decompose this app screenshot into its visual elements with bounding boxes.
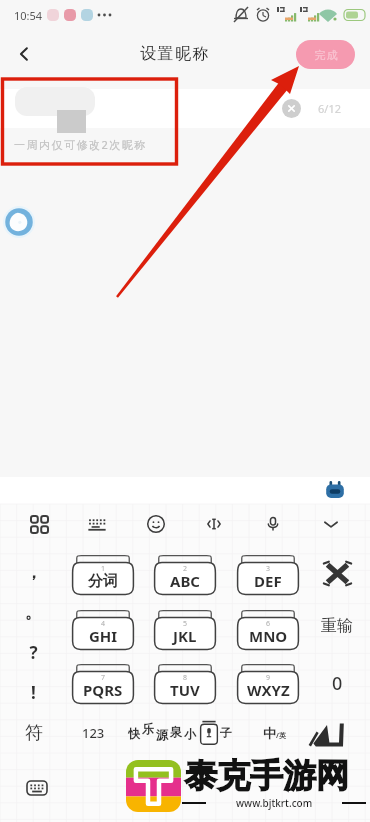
button[interactable]: Move cursor [194,504,234,544]
button[interactable]: 6 [236,610,300,650]
staticText: ! [31,681,36,704]
staticText: 0 [332,671,343,696]
button[interactable]: 123 [68,713,118,753]
staticText: ? [29,641,38,664]
staticText: WXYZ [247,680,290,700]
button[interactable]: Clear [282,99,301,118]
staticText: 。 [25,602,42,623]
button[interactable]: ， [5,552,61,592]
staticText: 分词 [88,572,118,591]
button[interactable]: Apps [19,504,59,544]
button[interactable]: 0 [311,663,363,703]
staticText: 7 [101,673,106,683]
button[interactable]: ? [5,632,61,672]
staticText: GHI [89,626,118,646]
staticText: 9 [266,673,271,683]
button[interactable]: 。 [5,592,61,632]
button[interactable]: 中 [252,713,296,753]
button[interactable]: Back [6,36,42,72]
button[interactable]: 完成 [296,40,355,69]
staticText: 1 [101,564,106,574]
button[interactable]: 2 [153,555,217,595]
button[interactable]: 5 [153,610,217,650]
staticText: 中 [263,725,276,741]
button[interactable]: 7 [71,664,135,704]
button[interactable]: Hide keyboard [311,504,351,544]
staticText: 子 [220,725,232,740]
button[interactable]: Emoji [136,504,176,544]
staticText: 一周内仅可修改2次昵称 [14,137,147,152]
button[interactable]: Voice input [253,504,293,544]
staticText: 123 [82,724,105,742]
staticText: PQRS [83,680,123,700]
staticText: 泉 [170,724,182,739]
staticText: ， [25,562,42,583]
staticText: DEF [254,571,282,591]
button[interactable]: 9 [236,664,300,704]
staticText: 泰克手游网 [184,755,349,797]
button[interactable]: Assistant [324,480,346,502]
staticText: 10:54 [14,8,43,23]
staticText: TUV [170,680,200,700]
button[interactable]: Enter [296,713,358,753]
staticText: 3 [266,564,271,574]
staticText: 乐 [142,721,154,736]
staticText: ABC [170,571,200,591]
staticText: 符 [25,722,43,745]
staticText: JKL [173,626,197,646]
staticText: 2 [183,564,188,574]
staticText: /英 [276,731,286,741]
button[interactable]: 4 [71,610,135,650]
staticText: MNO [249,626,288,646]
staticText: 6 [266,619,271,629]
staticText: 小 [184,726,196,741]
staticText: www.bjtkrt.com [236,796,313,810]
button[interactable]: 1 [71,555,135,595]
staticText: 完成 [314,48,338,62]
button[interactable]: 3 [236,555,300,595]
staticText: 8 [183,673,188,683]
button[interactable]: 符 [8,713,60,753]
button[interactable]: 8 [153,664,217,704]
staticText: 5 [183,619,188,629]
staticText: 4 [101,619,106,629]
staticText: 快 [128,726,140,741]
button[interactable]: Space [120,713,246,753]
button[interactable]: Delete [311,553,363,593]
button[interactable]: Keyboard layout [77,504,117,544]
staticText: 源 [156,727,168,742]
staticText: 6/12 [318,101,341,116]
button[interactable]: 重输 [311,606,363,646]
staticText: 重输 [321,616,353,636]
button[interactable]: ! [5,672,61,712]
button[interactable]: Floating assistant [3,206,35,238]
staticText: 设置昵称 [140,44,211,64]
button[interactable]: Switch keyboard [24,775,50,801]
